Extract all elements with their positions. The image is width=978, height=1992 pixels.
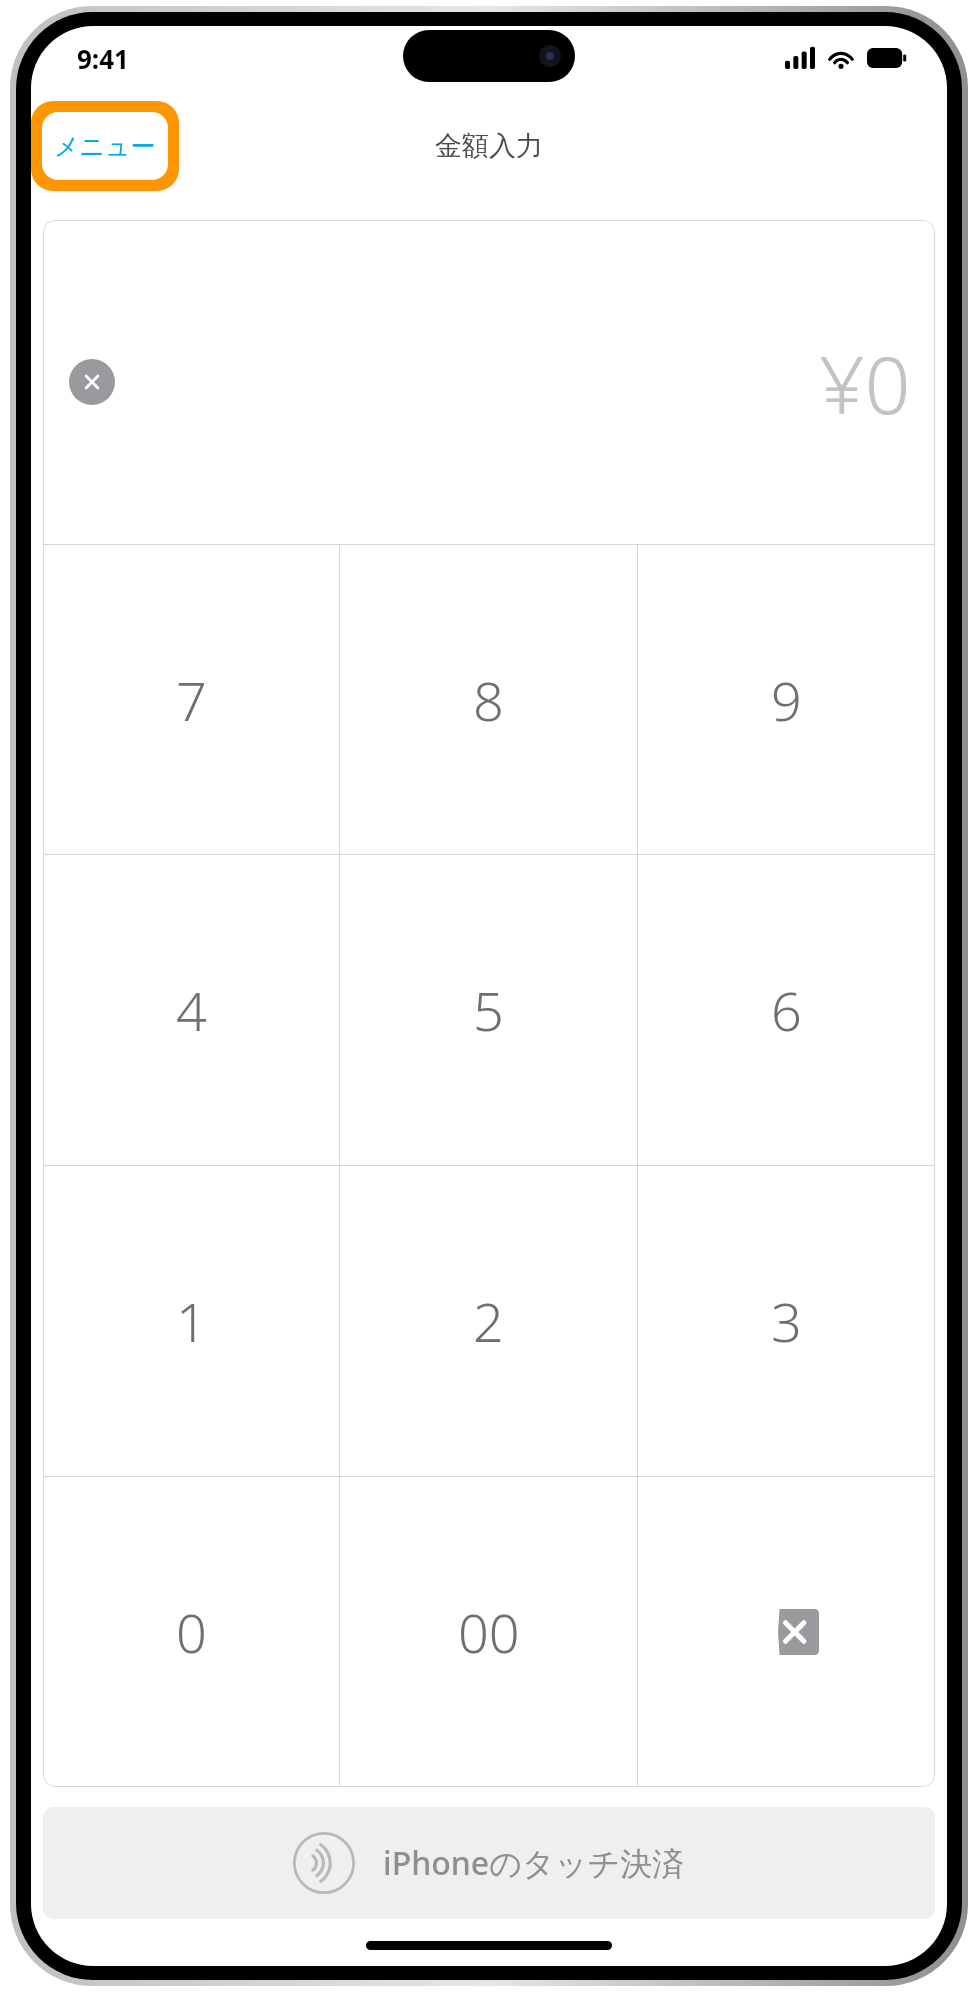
staticText: 4 xyxy=(176,973,207,1047)
button[interactable]: 3 xyxy=(638,1166,935,1476)
button[interactable]: 8 xyxy=(340,545,637,854)
button[interactable]: iPhoneのタッチ決済 xyxy=(43,1807,935,1919)
staticText: メニュー xyxy=(54,131,156,162)
button[interactable]: 6 xyxy=(638,855,935,1165)
staticText: 2 xyxy=(473,1284,504,1358)
staticText: ¥0 xyxy=(819,328,911,437)
button[interactable]: 4 xyxy=(43,855,339,1165)
staticText: 0 xyxy=(176,1595,207,1669)
staticText: 1 xyxy=(176,1284,207,1358)
staticText: 5 xyxy=(473,973,504,1047)
button[interactable]: 00 xyxy=(340,1477,637,1787)
staticText: 9:41 xyxy=(77,41,129,76)
staticText: 金額入力 xyxy=(435,129,543,163)
button[interactable]: 2 xyxy=(340,1166,637,1476)
staticText: 6 xyxy=(771,973,802,1047)
button[interactable]: 0 xyxy=(43,1477,339,1787)
staticText: 00 xyxy=(458,1595,520,1669)
button[interactable]: Delete xyxy=(638,1477,935,1787)
staticText: 7 xyxy=(176,663,207,737)
button[interactable]: メニュー xyxy=(42,112,168,180)
staticText: 8 xyxy=(473,663,504,737)
staticText: 9 xyxy=(771,663,802,737)
staticText: iPhoneのタッチ決済 xyxy=(383,1841,685,1885)
button[interactable]: Clear amount xyxy=(69,359,115,405)
button[interactable]: 5 xyxy=(340,855,637,1165)
button[interactable]: 7 xyxy=(43,545,339,854)
button[interactable]: 1 xyxy=(43,1166,339,1476)
staticText: 3 xyxy=(771,1284,802,1358)
button[interactable]: 9 xyxy=(638,545,935,854)
